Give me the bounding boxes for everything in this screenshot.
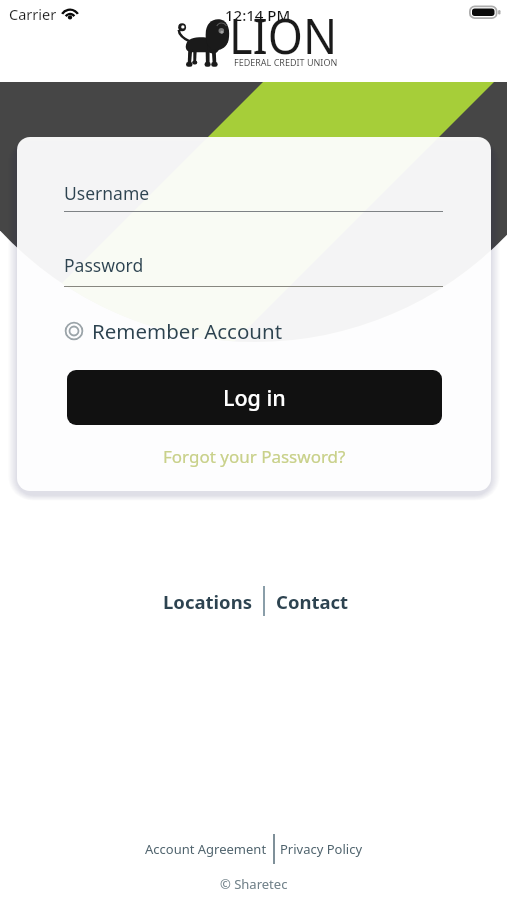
button[interactable]: Contact: [276, 589, 349, 614]
staticText: 12:14 PM: [225, 5, 291, 25]
button[interactable]: Log in: [67, 370, 442, 425]
staticText: Username: [64, 181, 150, 205]
staticText: Password: [64, 253, 144, 277]
button[interactable]: Locations: [163, 589, 252, 614]
button[interactable]: Remember Account: [60, 314, 287, 348]
button[interactable]: Forgot your Password?: [157, 445, 351, 468]
staticText: Log in: [223, 383, 286, 412]
staticText: Remember Account: [92, 317, 283, 345]
staticText: Carrier: [9, 4, 57, 24]
button[interactable]: Account Agreement: [145, 840, 267, 858]
button[interactable]: Privacy Policy: [280, 840, 363, 858]
staticText: Forgot your Password?: [163, 445, 346, 468]
staticText: © Sharetec: [220, 875, 288, 893]
staticText: FEDERAL CREDIT UNION: [234, 56, 338, 68]
staticText: LION: [229, 1, 338, 69]
